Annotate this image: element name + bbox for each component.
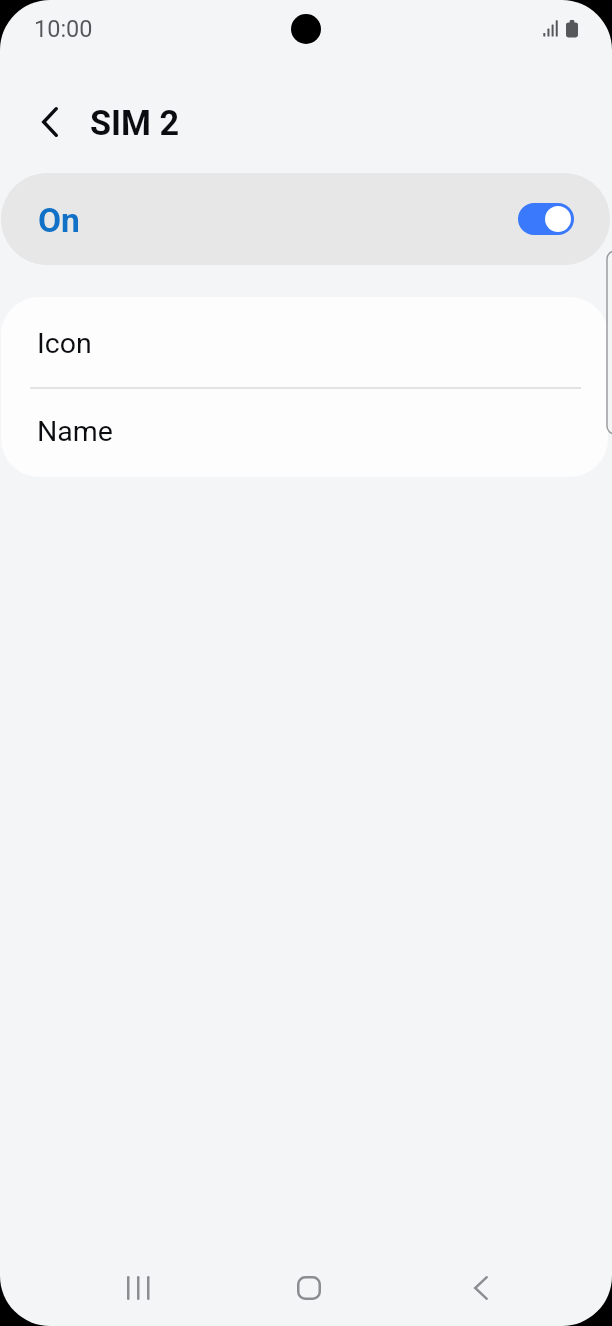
staticText: Icon [37,327,92,360]
staticText: On [38,201,80,240]
button[interactable]: Icon [1,297,608,387]
staticText: Name [37,415,113,448]
button[interactable]: Navigate up [20,100,80,144]
button[interactable]: Toggle SIM 2 [518,203,574,235]
staticText: 10:00 [34,15,93,43]
button[interactable]: On [1,173,610,265]
button[interactable]: Recent apps [107,1258,169,1318]
button[interactable]: Name [1,389,608,477]
staticText: SIM 2 [90,103,180,143]
button[interactable]: Home [278,1258,340,1318]
button[interactable]: Back [450,1258,512,1318]
